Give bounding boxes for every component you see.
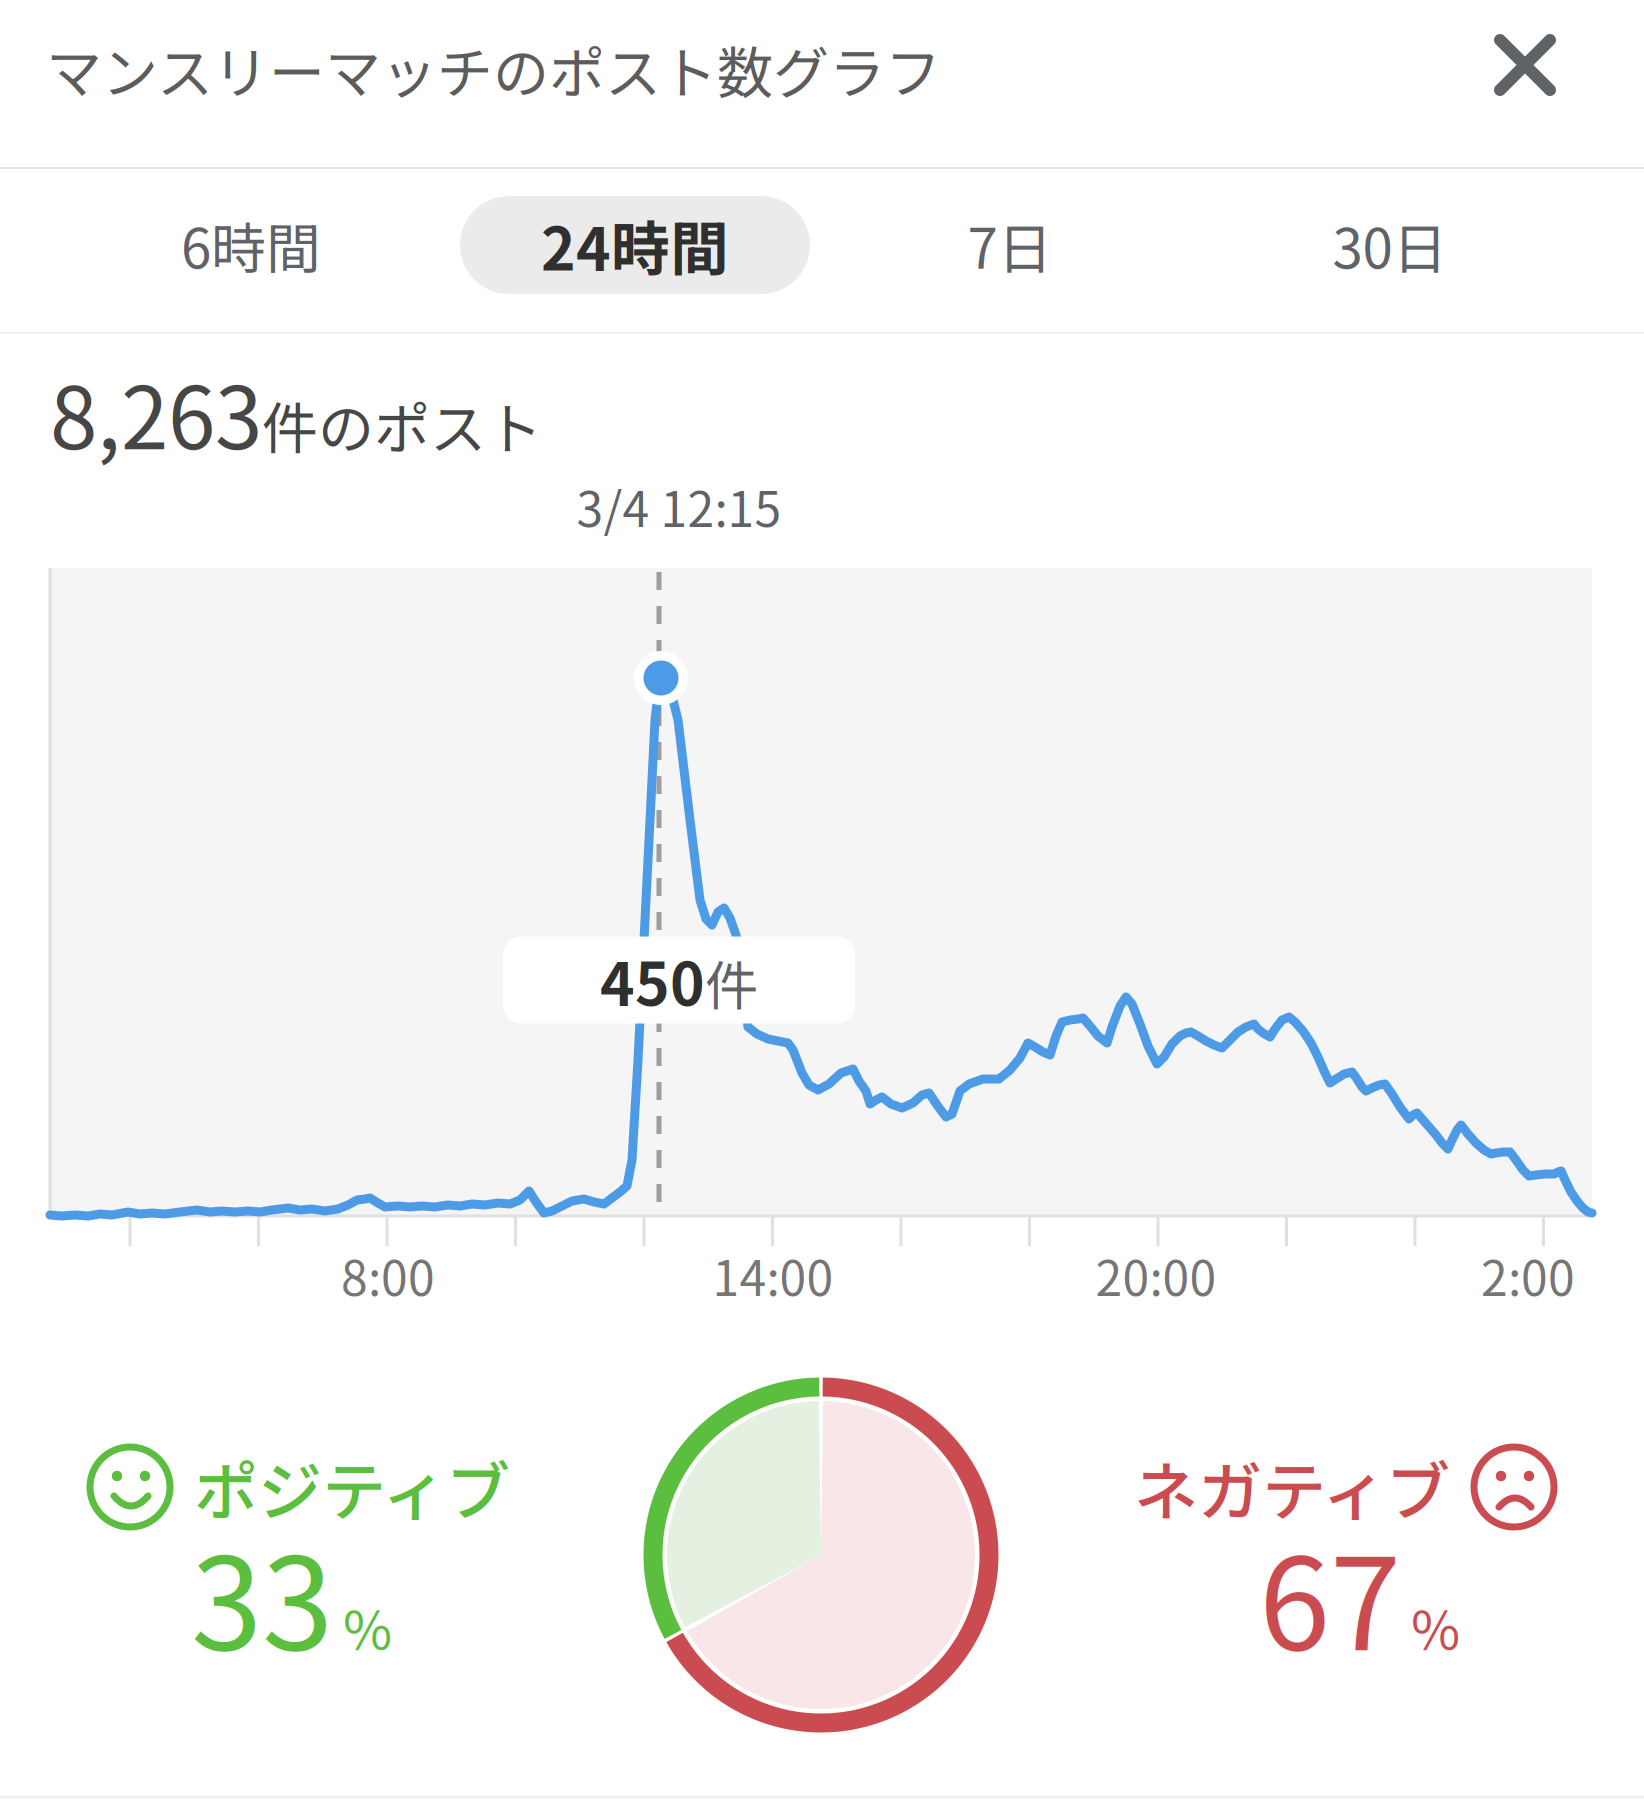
staticText: 8,263 xyxy=(50,350,262,474)
staticText: 3/4 12:15 xyxy=(576,471,781,541)
staticText: 6時間 xyxy=(181,205,321,285)
staticText: 67 xyxy=(1259,1501,1401,1687)
button[interactable]: 30日 xyxy=(1200,163,1580,327)
button[interactable]: 7日 xyxy=(820,163,1200,327)
staticText: 2:00 xyxy=(1481,1240,1575,1310)
staticText: 7日 xyxy=(967,205,1052,285)
button[interactable]: 閉じる xyxy=(1451,0,1601,141)
staticText: ポジティブ xyxy=(194,1441,510,1533)
staticText: % xyxy=(343,1588,392,1665)
staticText: マンスリーマッチのポスト数グラフ xyxy=(46,28,941,110)
button[interactable]: 24時間 xyxy=(445,163,825,327)
staticText: 8:00 xyxy=(341,1240,435,1310)
staticText: 20:00 xyxy=(1095,1240,1216,1310)
staticText: 件 xyxy=(705,944,758,1021)
staticText: 14:00 xyxy=(712,1240,833,1310)
staticText: ネガティブ xyxy=(1134,1441,1450,1533)
staticText: 30日 xyxy=(1332,205,1447,285)
staticText: 24時間 xyxy=(541,202,729,287)
button[interactable]: 6時間 xyxy=(61,163,441,327)
staticText: % xyxy=(1411,1588,1460,1665)
staticText: 件のポスト xyxy=(262,384,542,465)
staticText: 33 xyxy=(191,1501,333,1687)
staticText: 450 xyxy=(600,937,705,1022)
